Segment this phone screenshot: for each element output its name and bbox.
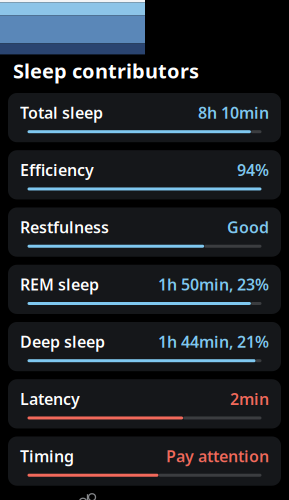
staticText: Latency	[20, 388, 80, 409]
button[interactable]: Deep sleep	[8, 322, 281, 371]
staticText: Good	[227, 216, 269, 238]
staticText: 1h 50min, 23%	[158, 274, 269, 295]
staticText: REM sleep	[20, 274, 99, 295]
staticText: Sleep contributors	[13, 57, 199, 84]
button[interactable]: Timing	[8, 436, 281, 486]
button[interactable]: Readiness	[59, 486, 116, 500]
staticText: Total sleep	[20, 102, 103, 123]
staticText: Restfulness	[20, 216, 109, 238]
staticText: Timing	[20, 445, 74, 467]
staticText: 1h 44min, 21%	[158, 331, 269, 352]
staticText: Pay attention	[166, 445, 269, 467]
staticText: 94%	[237, 159, 269, 180]
staticText: 8h 10min	[198, 102, 269, 123]
button[interactable]: Efficiency	[8, 150, 281, 199]
button[interactable]: Restfulness	[8, 207, 281, 257]
staticText: 2min	[230, 388, 269, 409]
button[interactable]: Total sleep	[8, 93, 281, 142]
button[interactable]: Latency	[8, 379, 281, 428]
staticText: Efficiency	[20, 159, 94, 180]
staticText: Deep sleep	[20, 331, 105, 352]
button[interactable]: REM sleep	[8, 265, 281, 314]
